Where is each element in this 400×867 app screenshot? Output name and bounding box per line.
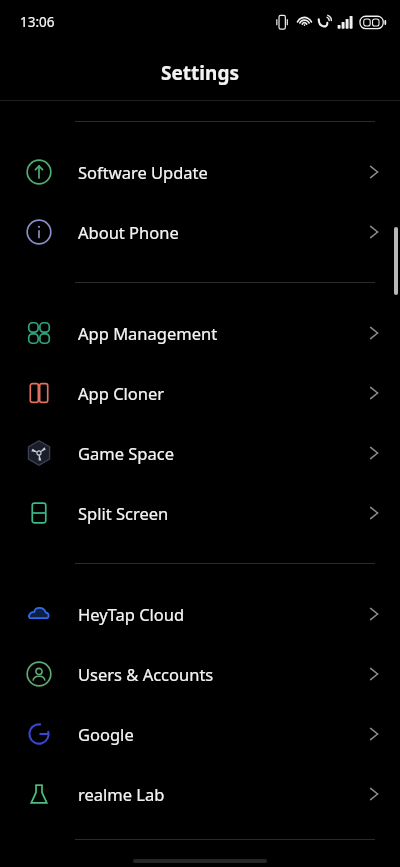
button[interactable]: About Phone xyxy=(0,202,400,262)
button[interactable]: Software Update xyxy=(0,142,400,202)
button[interactable]: Google xyxy=(0,704,400,764)
button[interactable]: realme Lab xyxy=(0,764,400,824)
staticText: Split Screen xyxy=(78,502,368,524)
staticText: Software Update xyxy=(78,161,368,183)
button[interactable]: Split Screen xyxy=(0,483,400,543)
staticText: Settings xyxy=(161,60,239,86)
staticText: App Cloner xyxy=(78,382,368,404)
button[interactable]: Game Space xyxy=(0,423,400,483)
button[interactable]: HeyTap Cloud xyxy=(0,584,400,644)
staticText: About Phone xyxy=(78,221,368,243)
staticText: Google xyxy=(78,723,368,745)
button[interactable]: Users & Accounts xyxy=(0,644,400,704)
button[interactable]: App Cloner xyxy=(0,363,400,423)
staticText: HeyTap Cloud xyxy=(78,603,368,625)
staticText: Users & Accounts xyxy=(78,663,368,685)
staticText: 13:06 xyxy=(20,13,55,31)
staticText: realme Lab xyxy=(78,783,368,805)
button[interactable]: App Management xyxy=(0,303,400,363)
staticText: App Management xyxy=(78,322,368,344)
staticText: Game Space xyxy=(78,442,368,464)
